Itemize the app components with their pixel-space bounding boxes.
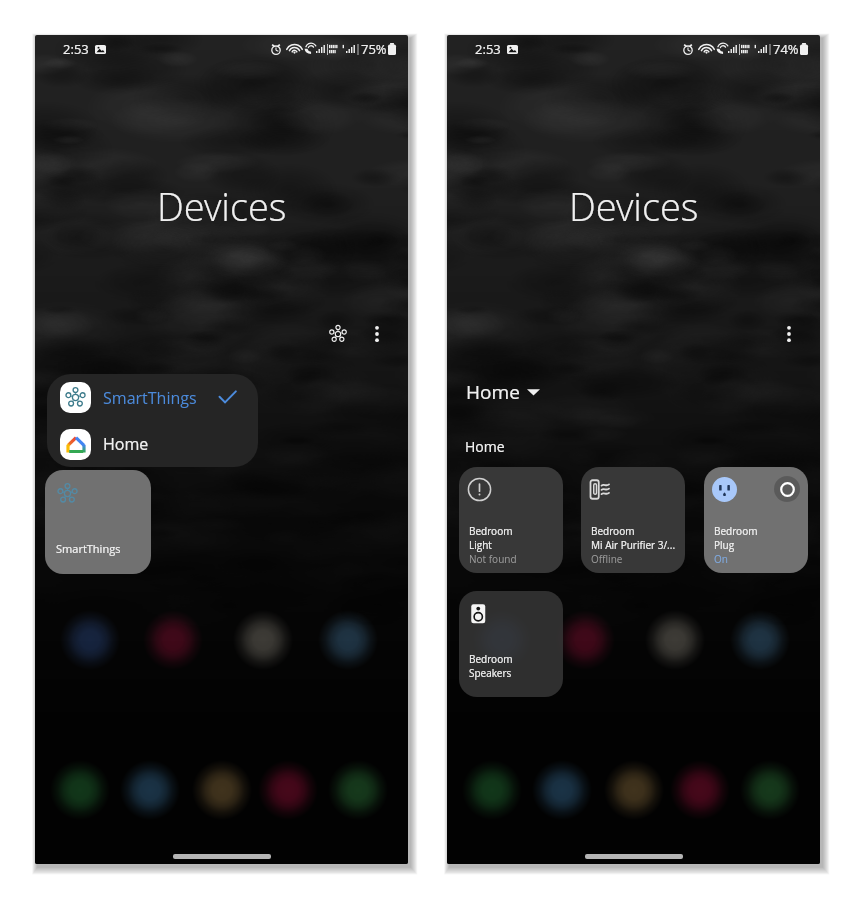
staticText: Offline — [591, 552, 623, 566]
button[interactable]: Home — [466, 379, 540, 405]
button[interactable]: More options — [357, 314, 397, 354]
staticText: Bedroom — [469, 652, 513, 666]
staticText: SmartThings — [56, 541, 121, 556]
button[interactable]: Toggle power — [774, 476, 800, 502]
staticText: Home — [103, 433, 149, 455]
staticText: Mi Air Purifier 3/... — [591, 538, 676, 552]
staticText: SmartThings — [103, 387, 197, 409]
button[interactable]: Bedroom — [459, 591, 563, 697]
staticText: Light — [469, 538, 492, 552]
staticText: Home — [465, 437, 505, 456]
button[interactable]: SmartThings — [318, 314, 358, 354]
staticText: 75% — [361, 40, 387, 58]
button[interactable]: SmartThings — [45, 470, 151, 574]
staticText: Speakers — [469, 666, 512, 680]
staticText: Devices — [569, 180, 699, 232]
staticText: Bedroom — [469, 524, 513, 538]
staticText: 2:53 — [63, 40, 89, 58]
staticText: 74% — [773, 40, 799, 58]
staticText: 2:53 — [475, 40, 501, 58]
button[interactable]: Bedroom — [459, 467, 563, 573]
button[interactable]: More options — [769, 314, 809, 354]
staticText: On — [714, 552, 728, 566]
staticText: Plug — [714, 538, 735, 552]
staticText: Devices — [157, 180, 287, 232]
staticText: Home — [466, 379, 520, 405]
button[interactable]: Bedroom — [581, 467, 685, 573]
staticText: Bedroom — [714, 524, 758, 538]
button[interactable]: Toggle power — [704, 467, 808, 573]
button[interactable]: Home — [47, 421, 258, 467]
staticText: Not found — [469, 552, 517, 566]
button[interactable]: SmartThings — [47, 374, 258, 421]
staticText: Bedroom — [591, 524, 635, 538]
